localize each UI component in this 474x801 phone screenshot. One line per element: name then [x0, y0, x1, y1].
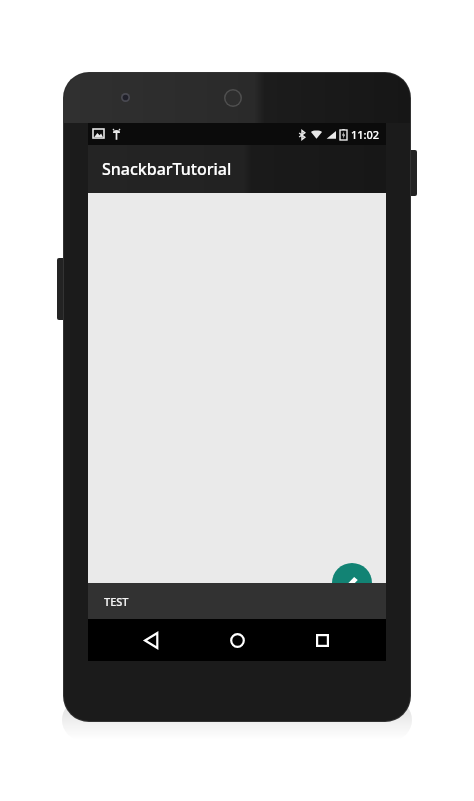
- staticText: 11:02: [351, 127, 380, 142]
- button[interactable]: Compose: [332, 563, 372, 603]
- staticText: SnackbarTutorial: [102, 158, 232, 180]
- button[interactable]: TEST: [88, 583, 386, 619]
- button[interactable]: Recents: [301, 619, 343, 661]
- button[interactable]: Home: [216, 619, 258, 661]
- button[interactable]: SnackbarTutorial: [88, 145, 386, 193]
- staticText: TEST: [104, 594, 129, 609]
- button[interactable]: Back: [131, 619, 173, 661]
